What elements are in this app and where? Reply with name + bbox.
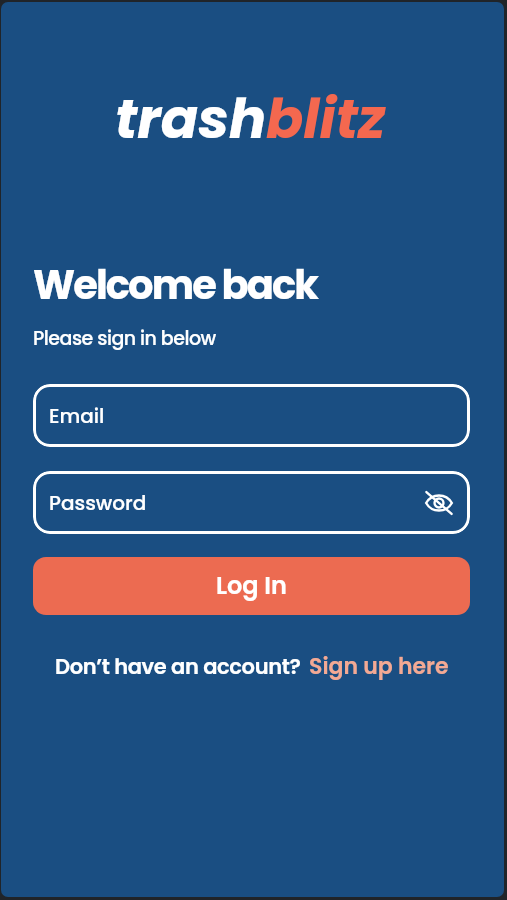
staticText: Please sign in below [33, 325, 216, 352]
staticText: Password [49, 489, 147, 517]
staticText: trashblitz [115, 80, 386, 157]
button[interactable]: Password [33, 471, 470, 534]
staticText: Email [49, 402, 105, 430]
button[interactable]: Sign up here [309, 651, 449, 682]
staticText: Don’t have an account? [55, 652, 301, 681]
staticText: Welcome back [33, 257, 318, 313]
button[interactable]: Log In [33, 557, 470, 615]
staticText: Sign up here [309, 651, 449, 682]
staticText: Log In [216, 569, 287, 603]
button[interactable]: Email [33, 384, 470, 447]
button[interactable]: Show password [422, 486, 456, 520]
